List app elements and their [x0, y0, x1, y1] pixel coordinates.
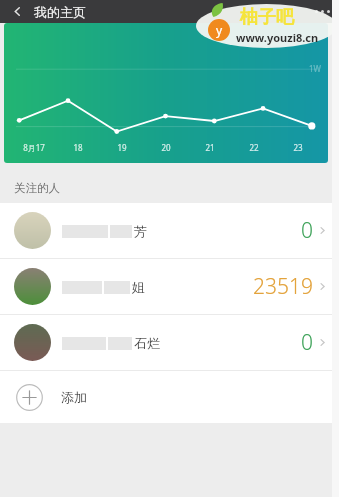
button[interactable]: 添加: [0, 371, 339, 423]
button[interactable]: More options: [305, 0, 339, 23]
staticText: 添加: [61, 389, 87, 405]
staticText: 8月17: [23, 142, 45, 153]
staticText: 姐: [132, 279, 145, 295]
staticText: 21: [205, 142, 215, 153]
staticText: www.youzi8.cn: [236, 30, 319, 45]
staticText: 0: [301, 216, 313, 245]
staticText: 23: [293, 142, 303, 153]
staticText: 柚子吧: [240, 6, 294, 29]
staticText: 0: [301, 328, 313, 357]
staticText: 20: [161, 142, 171, 153]
staticText: 芳: [134, 223, 147, 239]
button[interactable]: Back: [0, 0, 34, 23]
staticText: 22: [249, 142, 259, 153]
button[interactable]: 芳: [0, 203, 339, 258]
staticText: 我的主页: [34, 4, 86, 20]
button[interactable]: 石烂: [0, 315, 339, 370]
staticText: 1W: [309, 63, 322, 74]
staticText: 18: [73, 142, 83, 153]
staticText: 关注的人: [14, 181, 60, 195]
staticText: 石烂: [134, 335, 160, 351]
button[interactable]: 姐: [0, 259, 339, 314]
staticText: 23519: [253, 272, 313, 301]
button[interactable]: 8月17: [4, 23, 328, 163]
staticText: 19: [117, 142, 127, 153]
staticText: y: [216, 22, 223, 38]
